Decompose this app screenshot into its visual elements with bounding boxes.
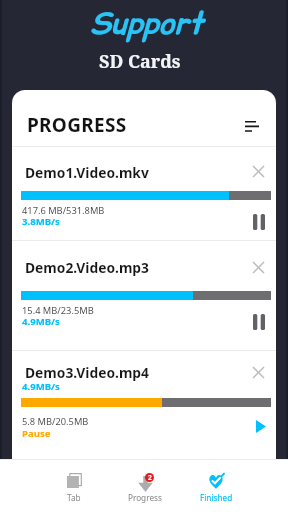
staticText: Finished xyxy=(200,492,233,503)
staticText: 5.8 MB/20.5MB xyxy=(22,415,89,428)
staticText: 2 xyxy=(148,473,152,482)
staticText: Tab xyxy=(67,492,81,503)
staticText: Demo3.Video.mp4 xyxy=(25,363,149,382)
button[interactable]: Cancel download xyxy=(246,159,270,183)
staticText: Demo2.Video.mp3 xyxy=(25,258,149,277)
staticText: Support xyxy=(90,2,203,44)
staticText: PROGRESS xyxy=(27,112,127,138)
staticText: 4.9MB/s xyxy=(22,380,60,393)
staticText: Demo1.Video.mkv xyxy=(25,163,149,182)
button[interactable]: Resume download xyxy=(246,413,272,439)
staticText: 15.4 MB/23.5MB xyxy=(22,304,94,317)
staticText: 417.6 MB/531.8MB xyxy=(22,204,105,217)
button[interactable]: Progress xyxy=(114,460,176,512)
button[interactable]: Pause download xyxy=(246,309,272,335)
staticText: Progress xyxy=(128,492,162,503)
button[interactable]: Cancel download xyxy=(246,360,270,384)
button[interactable]: Pause download xyxy=(246,209,272,235)
button[interactable]: Cancel download xyxy=(246,255,270,279)
staticText: 4.9MB/s xyxy=(22,315,60,328)
staticText: 3.8MB/s xyxy=(22,215,60,228)
staticText: SD Cards xyxy=(99,49,181,74)
staticText: Pause xyxy=(22,427,51,440)
button[interactable]: Tab xyxy=(43,460,105,512)
button[interactable]: Sort xyxy=(239,114,265,138)
button[interactable]: Finished xyxy=(185,460,247,512)
